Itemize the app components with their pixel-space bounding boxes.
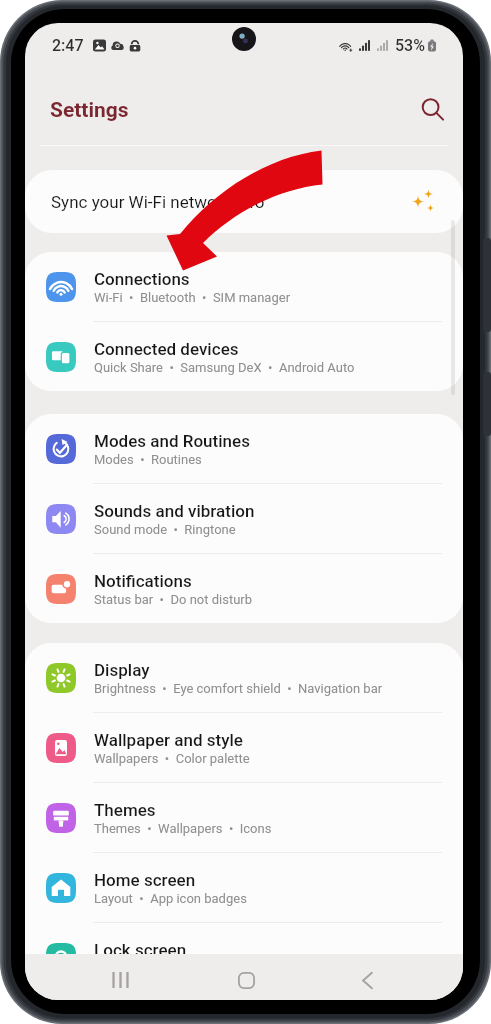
staticText: Connections bbox=[94, 269, 190, 289]
staticText: Wallpaper and style bbox=[94, 730, 243, 750]
staticText: Status bar • Do not disturb bbox=[94, 592, 253, 607]
button[interactable]: Display bbox=[25, 643, 463, 712]
staticText: Wi-Fi • Bluetooth • SIM manager bbox=[94, 290, 291, 305]
staticText: Sounds and vibration bbox=[94, 501, 255, 521]
staticText: Sync your Wi-Fi network info bbox=[51, 192, 265, 212]
button[interactable]: Connections bbox=[25, 252, 463, 321]
staticText: 2:47 bbox=[52, 36, 84, 55]
button[interactable]: Home bbox=[224, 958, 268, 1000]
staticText: 53% bbox=[395, 36, 425, 55]
button[interactable]: Notifications bbox=[25, 554, 463, 623]
button[interactable]: Wallpaper and style bbox=[25, 713, 463, 782]
staticText: Sound mode • Ringtone bbox=[94, 522, 236, 537]
staticText: Notifications bbox=[94, 571, 192, 591]
button[interactable]: Connected devices bbox=[25, 322, 463, 391]
staticText: Themes bbox=[94, 800, 156, 820]
staticText: Home screen bbox=[94, 870, 196, 890]
staticText: Settings bbox=[50, 98, 129, 123]
button[interactable]: Lock screen bbox=[25, 923, 463, 992]
staticText: Modes • Routines bbox=[94, 452, 202, 467]
button[interactable]: Search bbox=[411, 88, 455, 132]
staticText: Wallpapers • Color palette bbox=[94, 751, 250, 766]
button[interactable]: Sounds and vibration bbox=[25, 484, 463, 553]
staticText: Modes and Routines bbox=[94, 431, 250, 451]
button[interactable]: Themes bbox=[25, 783, 463, 852]
button[interactable]: Home screen bbox=[25, 853, 463, 922]
staticText: Connected devices bbox=[94, 339, 239, 359]
button[interactable]: Modes and Routines bbox=[25, 414, 463, 483]
staticText: Screen lock type • Always On Display bbox=[94, 961, 312, 976]
staticText: Lock screen bbox=[94, 940, 187, 960]
staticText: Quick Share • Samsung DeX • Android Auto bbox=[94, 360, 355, 375]
button[interactable]: Recent apps bbox=[98, 958, 142, 1000]
staticText: Themes • Wallpapers • Icons bbox=[94, 821, 272, 836]
staticText: Brightness • Eye comfort shield • Naviga… bbox=[94, 681, 383, 696]
staticText: Layout • App icon badges bbox=[94, 891, 247, 906]
button[interactable]: Sync your Wi-Fi network info bbox=[25, 170, 463, 233]
staticText: Display bbox=[94, 660, 150, 680]
button[interactable]: Back bbox=[345, 958, 389, 1000]
